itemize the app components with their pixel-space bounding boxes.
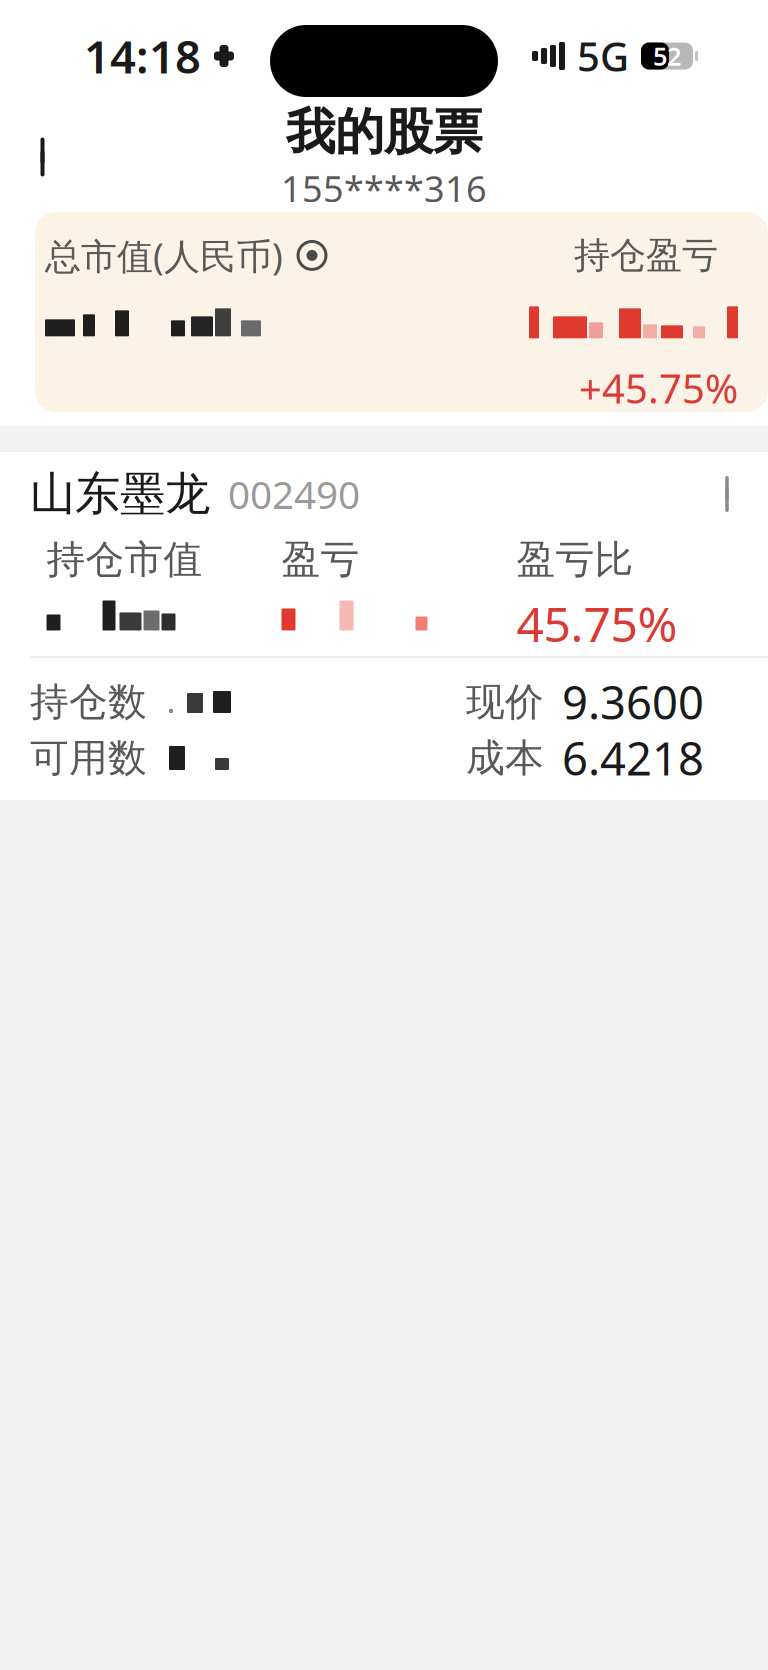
staticText: 52 <box>653 39 681 73</box>
staticText: 山东墨龙 <box>30 466 210 522</box>
staticText: 现价 <box>466 678 544 726</box>
button[interactable]: 山东墨龙 <box>0 452 768 536</box>
staticText: 14:18 <box>84 26 201 86</box>
button[interactable]: Toggle balance visibility <box>297 240 327 270</box>
staticText: 6.4218 <box>562 728 704 788</box>
staticText: 可用数 <box>30 734 147 782</box>
staticText: 持仓市值 <box>46 536 202 583</box>
button[interactable]: Back <box>8 118 86 196</box>
staticText: 盈亏 <box>281 536 359 583</box>
staticText: 155****316 <box>281 164 487 212</box>
staticText: +45.75% <box>579 361 738 414</box>
staticText: 持仓盈亏 <box>574 233 718 277</box>
staticText: 002490 <box>228 468 360 520</box>
staticText: 5G <box>577 29 629 82</box>
staticText: 总市值(人民币) <box>45 231 283 279</box>
staticText: 我的股票 <box>286 102 482 162</box>
staticText: 成本 <box>466 734 544 782</box>
staticText: 45.75% <box>516 591 677 655</box>
staticText: 9.3600 <box>562 672 704 732</box>
staticText: 盈亏比 <box>516 536 633 583</box>
staticText: 持仓数 <box>30 678 147 726</box>
